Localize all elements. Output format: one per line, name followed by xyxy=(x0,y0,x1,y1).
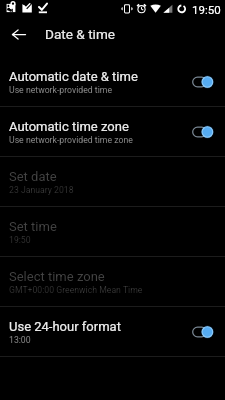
staticText: Date & time xyxy=(45,26,116,42)
button[interactable]: Use 24-hour format xyxy=(0,307,225,356)
staticText: 19:50 xyxy=(192,3,221,16)
button[interactable]: Set date xyxy=(0,157,225,206)
button[interactable]: Toggle xyxy=(189,119,215,145)
button[interactable]: Toggle xyxy=(189,319,215,345)
button[interactable]: Back xyxy=(0,16,36,52)
button[interactable]: Toggle xyxy=(189,69,215,95)
button[interactable]: Select time zone xyxy=(0,257,225,306)
staticText: Use network-provided time xyxy=(9,85,113,95)
staticText: Use 24-hour format xyxy=(9,319,121,334)
button[interactable]: Set time xyxy=(0,207,225,256)
staticText: 19:50 xyxy=(9,235,31,245)
staticText: Set time xyxy=(9,219,57,234)
button[interactable]: Automatic time zone xyxy=(0,107,225,156)
staticText: GMT+00:00 Greenwich Mean Time xyxy=(9,285,143,295)
staticText: 13:00 xyxy=(9,335,31,345)
staticText: 23 January 2018 xyxy=(9,185,74,195)
staticText: Set date xyxy=(9,169,57,184)
staticText: Automatic time zone xyxy=(9,119,129,134)
staticText: Automatic date & time xyxy=(9,69,138,84)
button[interactable]: Automatic date & time xyxy=(0,57,225,106)
staticText: Use network-provided time zone xyxy=(9,135,133,145)
staticText: Select time zone xyxy=(9,269,105,284)
